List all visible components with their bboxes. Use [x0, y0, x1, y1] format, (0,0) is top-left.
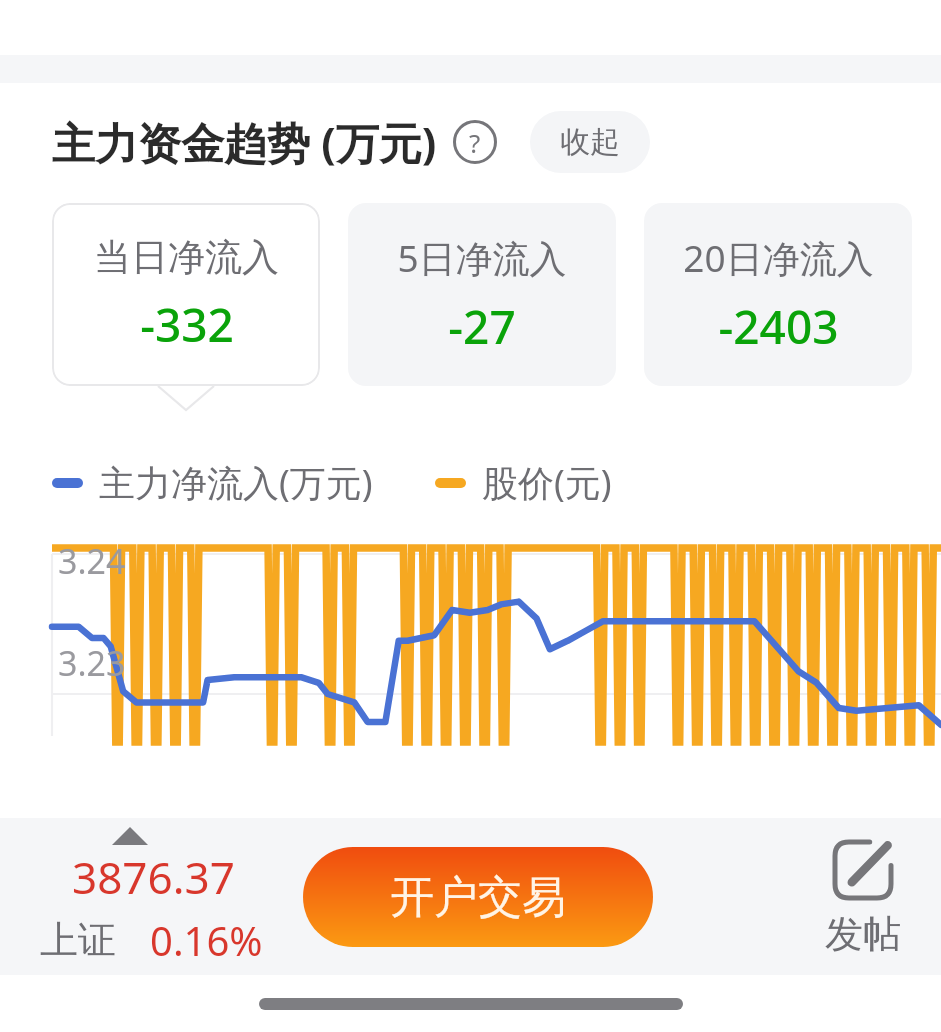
button[interactable]: 20日净流入 — [644, 203, 912, 386]
staticText: 0.16% — [150, 913, 263, 967]
staticText: 开户交易 — [390, 870, 566, 925]
staticText: 20日净流入 — [683, 232, 874, 283]
staticText: 3.24 — [58, 538, 126, 584]
button[interactable]: 当日净流入 — [52, 203, 320, 386]
staticText: 上证 — [40, 916, 116, 964]
staticText: -332 — [140, 293, 234, 356]
staticText: 发帖 — [825, 910, 901, 958]
staticText: ? — [469, 125, 481, 160]
staticText: 主力净流入(万元) — [99, 458, 373, 507]
button[interactable]: 收起 — [530, 111, 650, 173]
button[interactable]: 3876.37 — [40, 827, 263, 967]
staticText: 3.23 — [58, 640, 126, 686]
staticText: 5日净流入 — [397, 232, 567, 283]
staticText: -2403 — [718, 295, 839, 358]
staticText: 收起 — [560, 123, 620, 161]
button[interactable]: 发帖 — [825, 836, 901, 958]
button[interactable]: Help — [453, 120, 497, 164]
staticText: 股价(元) — [482, 458, 612, 507]
staticText: 3876.37 — [72, 847, 235, 907]
staticText: 当日净流入 — [94, 234, 279, 281]
button[interactable]: 5日净流入 — [348, 203, 616, 386]
staticText: 主力资金趋势 (万元) — [52, 113, 437, 172]
button[interactable]: 开户交易 — [303, 847, 653, 947]
staticText: -27 — [448, 295, 516, 358]
